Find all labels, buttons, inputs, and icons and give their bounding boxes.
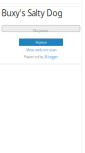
staticText: Blogger [44, 54, 58, 59]
button[interactable]: View web version [26, 47, 56, 52]
staticText: Buxy's Salty Dog [1, 8, 62, 18]
staticText: Powered by [23, 54, 43, 59]
staticText: Home [35, 39, 46, 45]
staticText: No posts. [33, 28, 49, 33]
button[interactable]: Home [19, 38, 63, 46]
staticText: View web version [26, 47, 56, 52]
